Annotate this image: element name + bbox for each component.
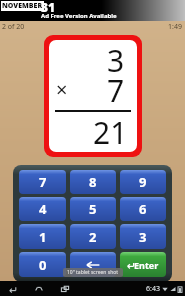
staticText: 0 <box>39 256 47 274</box>
staticText: 4 <box>39 200 47 218</box>
button[interactable]: 8 <box>70 170 116 194</box>
button[interactable]: Recent apps <box>58 282 71 295</box>
staticText: 3 <box>107 40 125 81</box>
button[interactable]: 7 <box>19 170 66 194</box>
staticText: 7 <box>39 173 47 191</box>
staticText: 8 <box>89 173 97 191</box>
button[interactable]: Home <box>32 282 45 295</box>
button[interactable]: Backspace <box>70 252 116 277</box>
staticText: 3 <box>139 228 147 246</box>
staticText: 21 <box>93 112 128 152</box>
button[interactable]: Ad Free Version Available <box>0 0 185 21</box>
staticText: 7 <box>107 70 125 111</box>
staticText: 10" tablet screen shot <box>67 269 119 276</box>
staticText: 31 <box>41 0 56 15</box>
button[interactable]: Back <box>6 282 19 295</box>
button[interactable]: 0 <box>19 252 66 277</box>
staticText: 2 of 20 <box>2 22 25 32</box>
button[interactable]: 9 <box>120 170 166 194</box>
staticText: NOVEMBER <box>2 1 43 11</box>
button[interactable]: 1 <box>19 224 66 249</box>
button[interactable]: Enter <box>120 252 166 277</box>
staticText: 9 <box>139 173 147 191</box>
staticText: × <box>56 76 68 103</box>
button[interactable]: 6 <box>120 197 166 221</box>
button[interactable]: 5 <box>70 197 116 221</box>
button[interactable]: 3 <box>49 40 137 152</box>
button[interactable]: 4 <box>19 197 66 221</box>
staticText: Enter <box>134 259 159 271</box>
staticText: 6 <box>139 200 147 218</box>
staticText: 6:43 <box>146 284 160 294</box>
button[interactable]: 2 <box>70 224 116 249</box>
button[interactable]: 3 <box>120 224 166 249</box>
staticText: Ad Free Version Available <box>41 12 117 20</box>
staticText: 5 <box>89 200 97 218</box>
staticText: 2 <box>89 228 97 246</box>
staticText: 1:49 <box>168 22 182 32</box>
staticText: 1 <box>39 228 47 246</box>
